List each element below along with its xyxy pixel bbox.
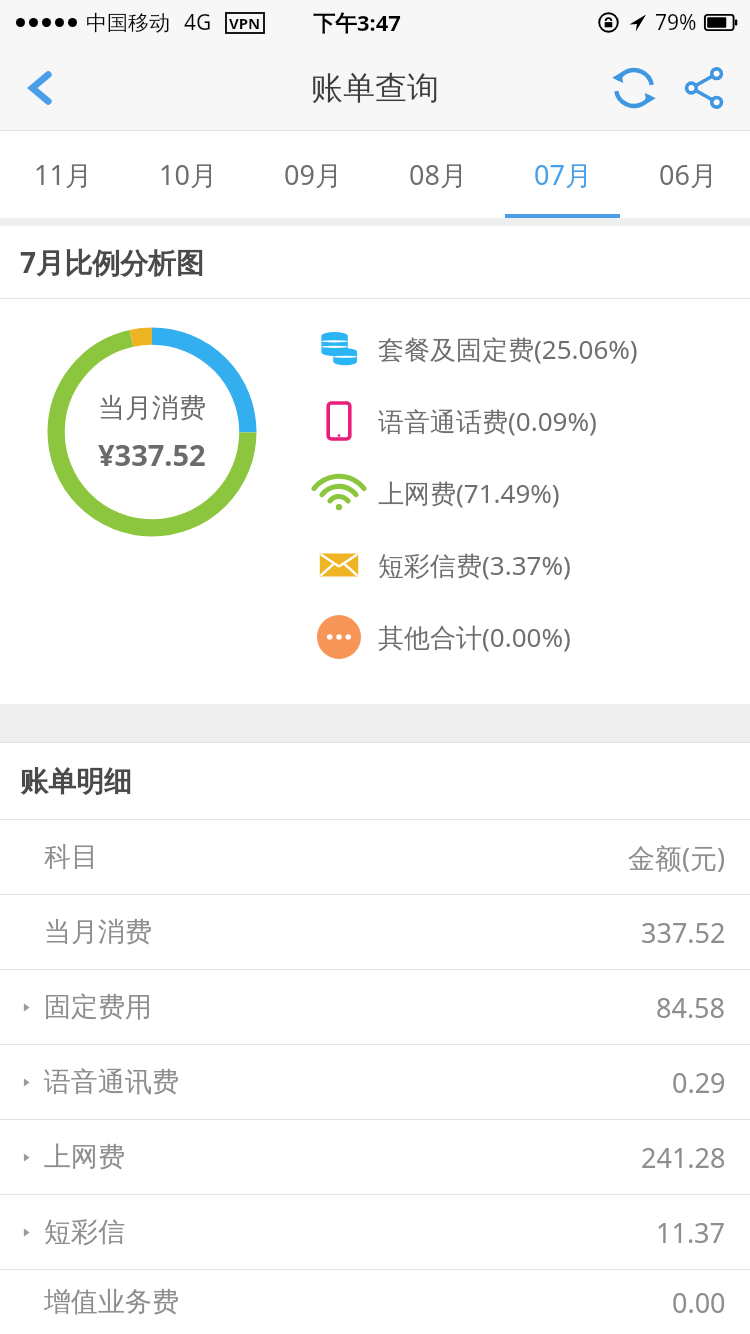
button[interactable]: 增值业务费	[0, 1270, 750, 1334]
staticText: 07月	[534, 156, 592, 193]
staticText: 上网费(71.49%)	[378, 475, 560, 511]
staticText: 当月消费	[44, 915, 152, 949]
staticText: 其他合计(0.00%)	[378, 619, 571, 655]
staticText: ¥337.52	[98, 435, 206, 474]
staticText: 09月	[284, 156, 342, 193]
staticText: 4G	[184, 8, 212, 37]
button[interactable]: 套餐及固定费(25.06%)	[316, 313, 638, 385]
staticText: 11.37	[656, 1214, 726, 1251]
button[interactable]: 上网费	[0, 1120, 750, 1194]
button[interactable]: 分享	[672, 56, 736, 120]
button[interactable]: 08月	[375, 131, 500, 218]
staticText: 84.58	[656, 989, 726, 1026]
button[interactable]: 当月消费	[0, 895, 750, 969]
staticText: 语音通话费(0.09%)	[378, 403, 597, 439]
button[interactable]: 固定费用	[0, 970, 750, 1044]
staticText: 科目	[44, 840, 98, 874]
staticText: 账单明细	[20, 764, 132, 799]
button[interactable]: 科目	[0, 820, 750, 894]
staticText: 中国移动	[86, 10, 170, 36]
button[interactable]: 其他合计(0.00%)	[316, 601, 571, 673]
button[interactable]: 短彩信费(3.37%)	[316, 529, 571, 601]
staticText: 上网费	[44, 1140, 125, 1174]
staticText: 语音通讯费	[44, 1065, 179, 1099]
staticText: 账单查询	[311, 68, 439, 108]
staticText: 增值业务费	[44, 1285, 179, 1319]
staticText: 337.52	[641, 914, 726, 951]
staticText: 11月	[34, 156, 92, 193]
button[interactable]: 07月	[500, 131, 625, 218]
staticText: 当月消费	[98, 391, 206, 425]
button[interactable]: 语音通讯费	[0, 1045, 750, 1119]
button[interactable]: 06月	[625, 131, 750, 218]
staticText: 10月	[159, 156, 217, 193]
button[interactable]: 返回	[6, 53, 76, 123]
staticText: 下午3:47	[313, 7, 401, 37]
staticText: 固定费用	[44, 990, 152, 1024]
button[interactable]: 上网费(71.49%)	[316, 457, 560, 529]
staticText: 短彩信	[44, 1215, 125, 1249]
staticText: VPN	[229, 13, 261, 33]
button[interactable]: 短彩信	[0, 1195, 750, 1269]
staticText: 0.00	[672, 1284, 726, 1321]
staticText: 套餐及固定费(25.06%)	[378, 331, 638, 367]
button[interactable]: 09月	[250, 131, 375, 218]
staticText: 0.29	[672, 1064, 726, 1101]
button[interactable]: 10月	[125, 131, 250, 218]
button[interactable]: 刷新	[602, 56, 666, 120]
button[interactable]: 语音通话费(0.09%)	[316, 385, 597, 457]
staticText: 金额(元)	[628, 839, 726, 876]
staticText: 08月	[409, 156, 467, 193]
staticText: 短彩信费(3.37%)	[378, 547, 571, 583]
button[interactable]: 11月	[0, 131, 125, 218]
staticText: 79%	[655, 8, 697, 37]
staticText: 241.28	[641, 1139, 726, 1176]
staticText: 06月	[659, 156, 717, 193]
staticText: 7月比例分析图	[20, 243, 205, 281]
